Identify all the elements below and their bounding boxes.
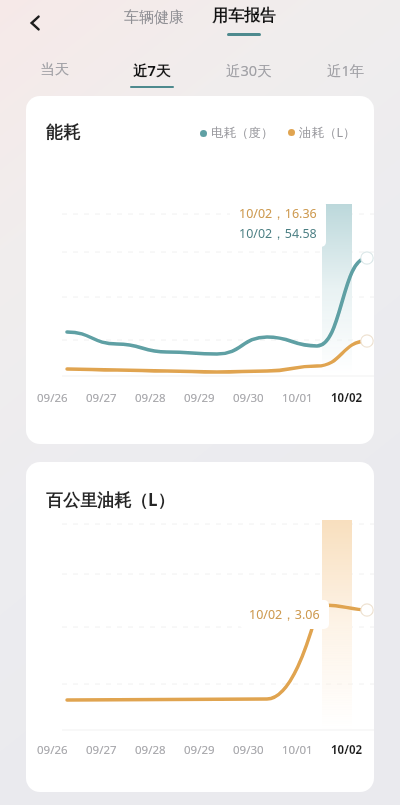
staticText: 10/01 [282,390,313,406]
staticText: 百公里油耗（L） [46,488,175,511]
button[interactable]: 近30天 [200,46,297,80]
staticText: 10/02 [331,742,363,758]
staticText: 09/27 [86,742,117,758]
staticText: 09/28 [135,390,166,406]
staticText: 10/02，3.06 [249,606,320,623]
button[interactable]: 近1年 [297,46,394,80]
staticText: 用车报告 [212,6,276,26]
button[interactable]: 能耗 [26,96,374,444]
button[interactable]: 近7天 [103,46,200,88]
staticText: 10/02 [331,390,363,406]
staticText: 09/26 [37,390,68,406]
staticText: 能耗 [46,122,80,143]
staticText: 近30天 [226,60,272,80]
staticText: 10/02，54.58 [239,225,317,242]
staticText: 10/02，16.36 [239,205,317,222]
staticText: 油耗（L） [299,124,356,141]
staticText: 09/28 [135,742,166,758]
staticText: 电耗（度） [211,125,274,141]
button[interactable]: 车辆健康 [118,6,190,29]
staticText: 车辆健康 [124,8,184,27]
staticText: 09/29 [184,390,215,406]
staticText: 09/29 [184,742,215,758]
button[interactable]: 当天 [6,46,103,78]
button[interactable]: Back [18,6,52,40]
staticText: 09/27 [86,390,117,406]
staticText: 10/01 [282,742,313,758]
button[interactable]: 用车报告 [208,6,280,36]
staticText: 09/30 [233,390,264,406]
staticText: 近7天 [133,60,171,80]
staticText: 当天 [40,60,69,78]
button[interactable]: 百公里油耗（L） [26,462,374,792]
staticText: 09/26 [37,742,68,758]
staticText: 09/30 [233,742,264,758]
staticText: 近1年 [327,60,365,80]
